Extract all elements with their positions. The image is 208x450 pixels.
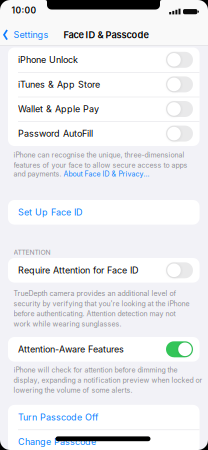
button[interactable]: Back to Settings [3, 28, 49, 42]
button[interactable]: About Face ID & Privacy... [63, 170, 149, 178]
staticText: Attention-Aware Features [18, 344, 124, 355]
staticText: Set Up Face ID [18, 207, 82, 218]
staticText: security by verifying that you're lookin… [13, 299, 189, 308]
button[interactable]: Turn Passcode Off [8, 405, 199, 429]
staticText: before authenticating. Attention detecti… [13, 310, 175, 318]
button[interactable]: Password AutoFill [8, 121, 199, 146]
staticText: work while wearing sunglasses. [13, 320, 121, 328]
staticText: iTunes & App Store [18, 79, 100, 90]
staticText: Wallet & Apple Pay [18, 104, 99, 114]
button[interactable]: Wallet & Apple Pay [8, 97, 199, 121]
staticText: 10:00 [11, 5, 36, 15]
staticText: iPhone will check for attention before d… [13, 366, 177, 374]
staticText: features of your face to allow secure ac… [13, 161, 187, 169]
staticText: Change Passcode [18, 436, 96, 447]
staticText: iPhone Unlock [18, 54, 78, 65]
staticText: Require Attention for Face ID [18, 265, 138, 276]
staticText: Turn Passcode Off [18, 412, 98, 422]
button[interactable]: Attention-Aware Features [8, 337, 199, 362]
staticText: iPhone can recognise the unique, three-d… [13, 151, 184, 159]
staticText: Password AutoFill [18, 128, 93, 139]
staticText: ATTENTION [13, 248, 50, 256]
button[interactable]: Require Attention for Face ID [8, 258, 199, 283]
staticText: About Face ID & Privacy... [63, 170, 149, 178]
staticText: display, expanding a notification previe… [13, 376, 202, 384]
button[interactable]: Change Passcode [8, 429, 199, 450]
staticText: Face ID & Passcode [63, 29, 148, 40]
button[interactable]: Set Up Face ID [8, 200, 199, 225]
staticText: and payments. [13, 170, 63, 178]
button[interactable]: iPhone Unlock [8, 47, 199, 72]
button[interactable]: iTunes & App Store [8, 72, 199, 97]
staticText: Settings [13, 29, 48, 40]
staticText: lowering the volume of some alerts. [13, 386, 132, 394]
staticText: TrueDepth camera provides an additional … [13, 289, 176, 298]
